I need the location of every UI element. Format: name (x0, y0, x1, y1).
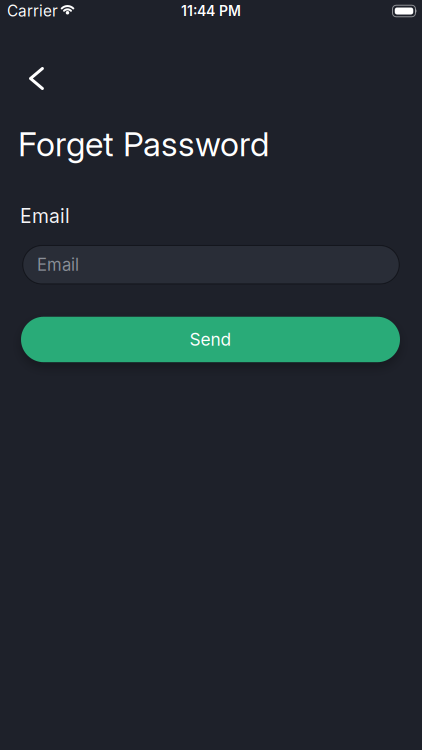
button[interactable]: Email (22, 245, 400, 285)
staticText: Carrier (7, 2, 58, 20)
button[interactable]: Back (23, 61, 50, 96)
button[interactable]: Send (21, 317, 400, 362)
staticText: 11:44 PM (181, 2, 241, 19)
staticText: Forget Password (18, 124, 269, 164)
staticText: Email (20, 204, 70, 228)
staticText: Email (37, 255, 79, 275)
staticText: Send (189, 329, 231, 350)
